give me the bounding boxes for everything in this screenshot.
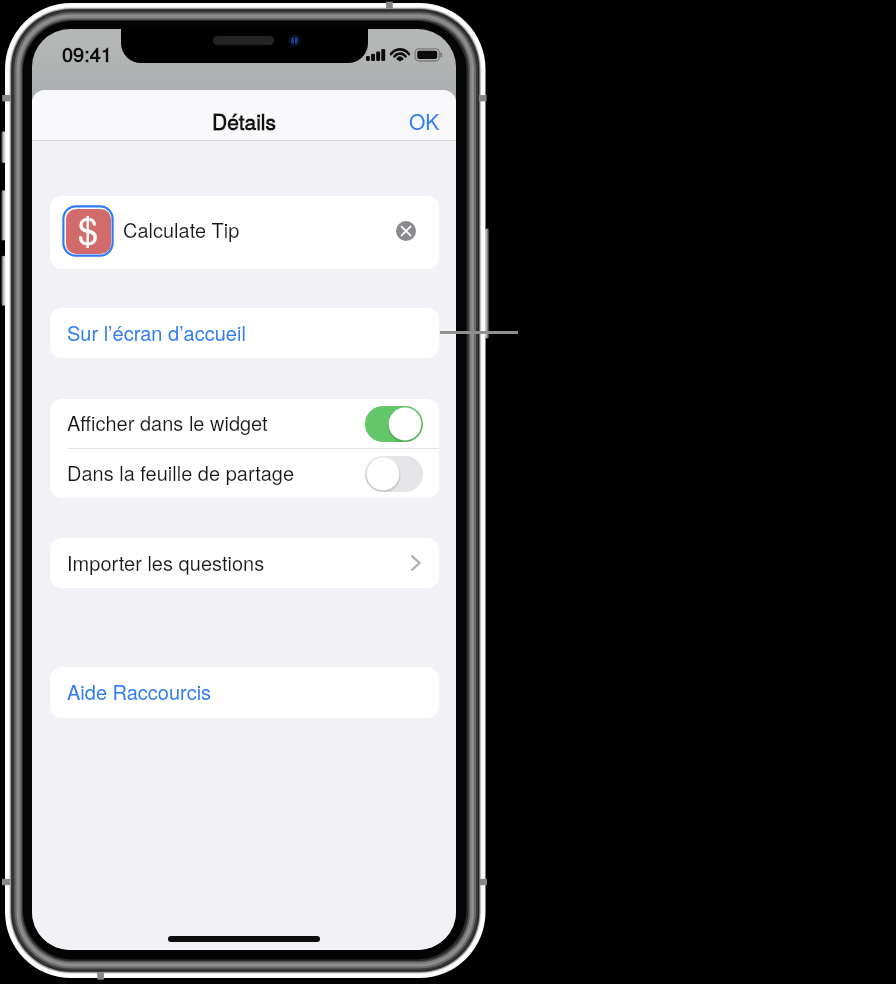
button[interactable]: Aide Raccourcis xyxy=(50,667,439,718)
button[interactable]: $ xyxy=(50,196,439,269)
staticText: 09:41 xyxy=(62,39,113,68)
button[interactable]: OK xyxy=(389,90,456,141)
button[interactable]: Enabled xyxy=(365,406,423,442)
button[interactable]: Dans la feuille de partage xyxy=(50,449,439,498)
staticText: OK xyxy=(409,106,440,131)
staticText: Aide Raccourcis xyxy=(67,677,212,706)
staticText: Dans la feuille de partage xyxy=(67,458,295,487)
staticText: $ xyxy=(78,209,99,248)
staticText: Détails xyxy=(212,106,276,136)
button[interactable]: Remove shortcut xyxy=(389,214,422,247)
staticText: Afficher dans le widget xyxy=(67,408,268,437)
button[interactable]: Importer les questions xyxy=(50,538,439,588)
staticText: Calculate Tip xyxy=(123,215,240,244)
button[interactable]: Disabled xyxy=(365,456,423,492)
button[interactable]: Afficher dans le widget xyxy=(50,399,439,448)
staticText: Sur l’écran d’accueil xyxy=(67,318,246,347)
staticText: Importer les questions xyxy=(67,548,265,577)
button[interactable]: Sur l’écran d’accueil xyxy=(50,308,439,358)
